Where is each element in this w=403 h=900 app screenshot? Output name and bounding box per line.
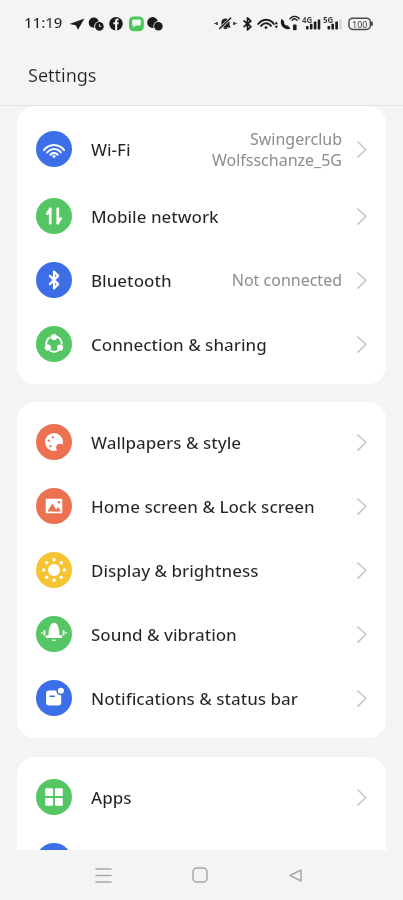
staticText: 100: [352, 18, 368, 30]
button[interactable]: Bluetooth: [17, 248, 386, 312]
staticText: Bluetooth: [91, 269, 172, 292]
button[interactable]: Sound & vibration: [17, 602, 386, 666]
button[interactable]: Wallpapers & style: [17, 410, 386, 474]
button[interactable]: Recent apps: [79, 851, 127, 899]
staticText: 11:19: [24, 12, 63, 32]
staticText: 4G: [302, 14, 313, 25]
button[interactable]: Mobile network: [17, 184, 386, 248]
staticText: Apps: [91, 786, 132, 809]
button[interactable]: Home screen & Lock screen: [17, 474, 386, 538]
button[interactable]: Display & brightness: [17, 538, 386, 602]
staticText: Notifications & status bar: [91, 687, 298, 710]
staticText: Wallpapers & style: [91, 431, 242, 454]
button[interactable]: Notifications & status bar: [17, 666, 386, 730]
staticText: Mobile network: [91, 205, 219, 228]
button[interactable]: Passwords & security: [17, 829, 386, 892]
button[interactable]: Home: [176, 851, 224, 899]
staticText: Swingerclub Wolfsschanze_5G: [211, 128, 342, 171]
staticText: Connection & sharing: [91, 333, 267, 356]
button[interactable]: Wi-Fi: [17, 114, 386, 184]
staticText: Display & brightness: [91, 559, 259, 582]
staticText: Home screen & Lock screen: [91, 495, 315, 518]
staticText: Wi-Fi: [91, 138, 131, 161]
staticText: Not connected: [231, 269, 342, 291]
staticText: Settings: [28, 63, 97, 88]
staticText: Passwords & security: [91, 849, 264, 872]
button[interactable]: Connection & sharing: [17, 312, 386, 376]
button[interactable]: Apps: [17, 765, 386, 829]
staticText: Sound & vibration: [91, 623, 237, 646]
staticText: 5G: [323, 14, 334, 25]
button[interactable]: Back: [271, 851, 319, 899]
